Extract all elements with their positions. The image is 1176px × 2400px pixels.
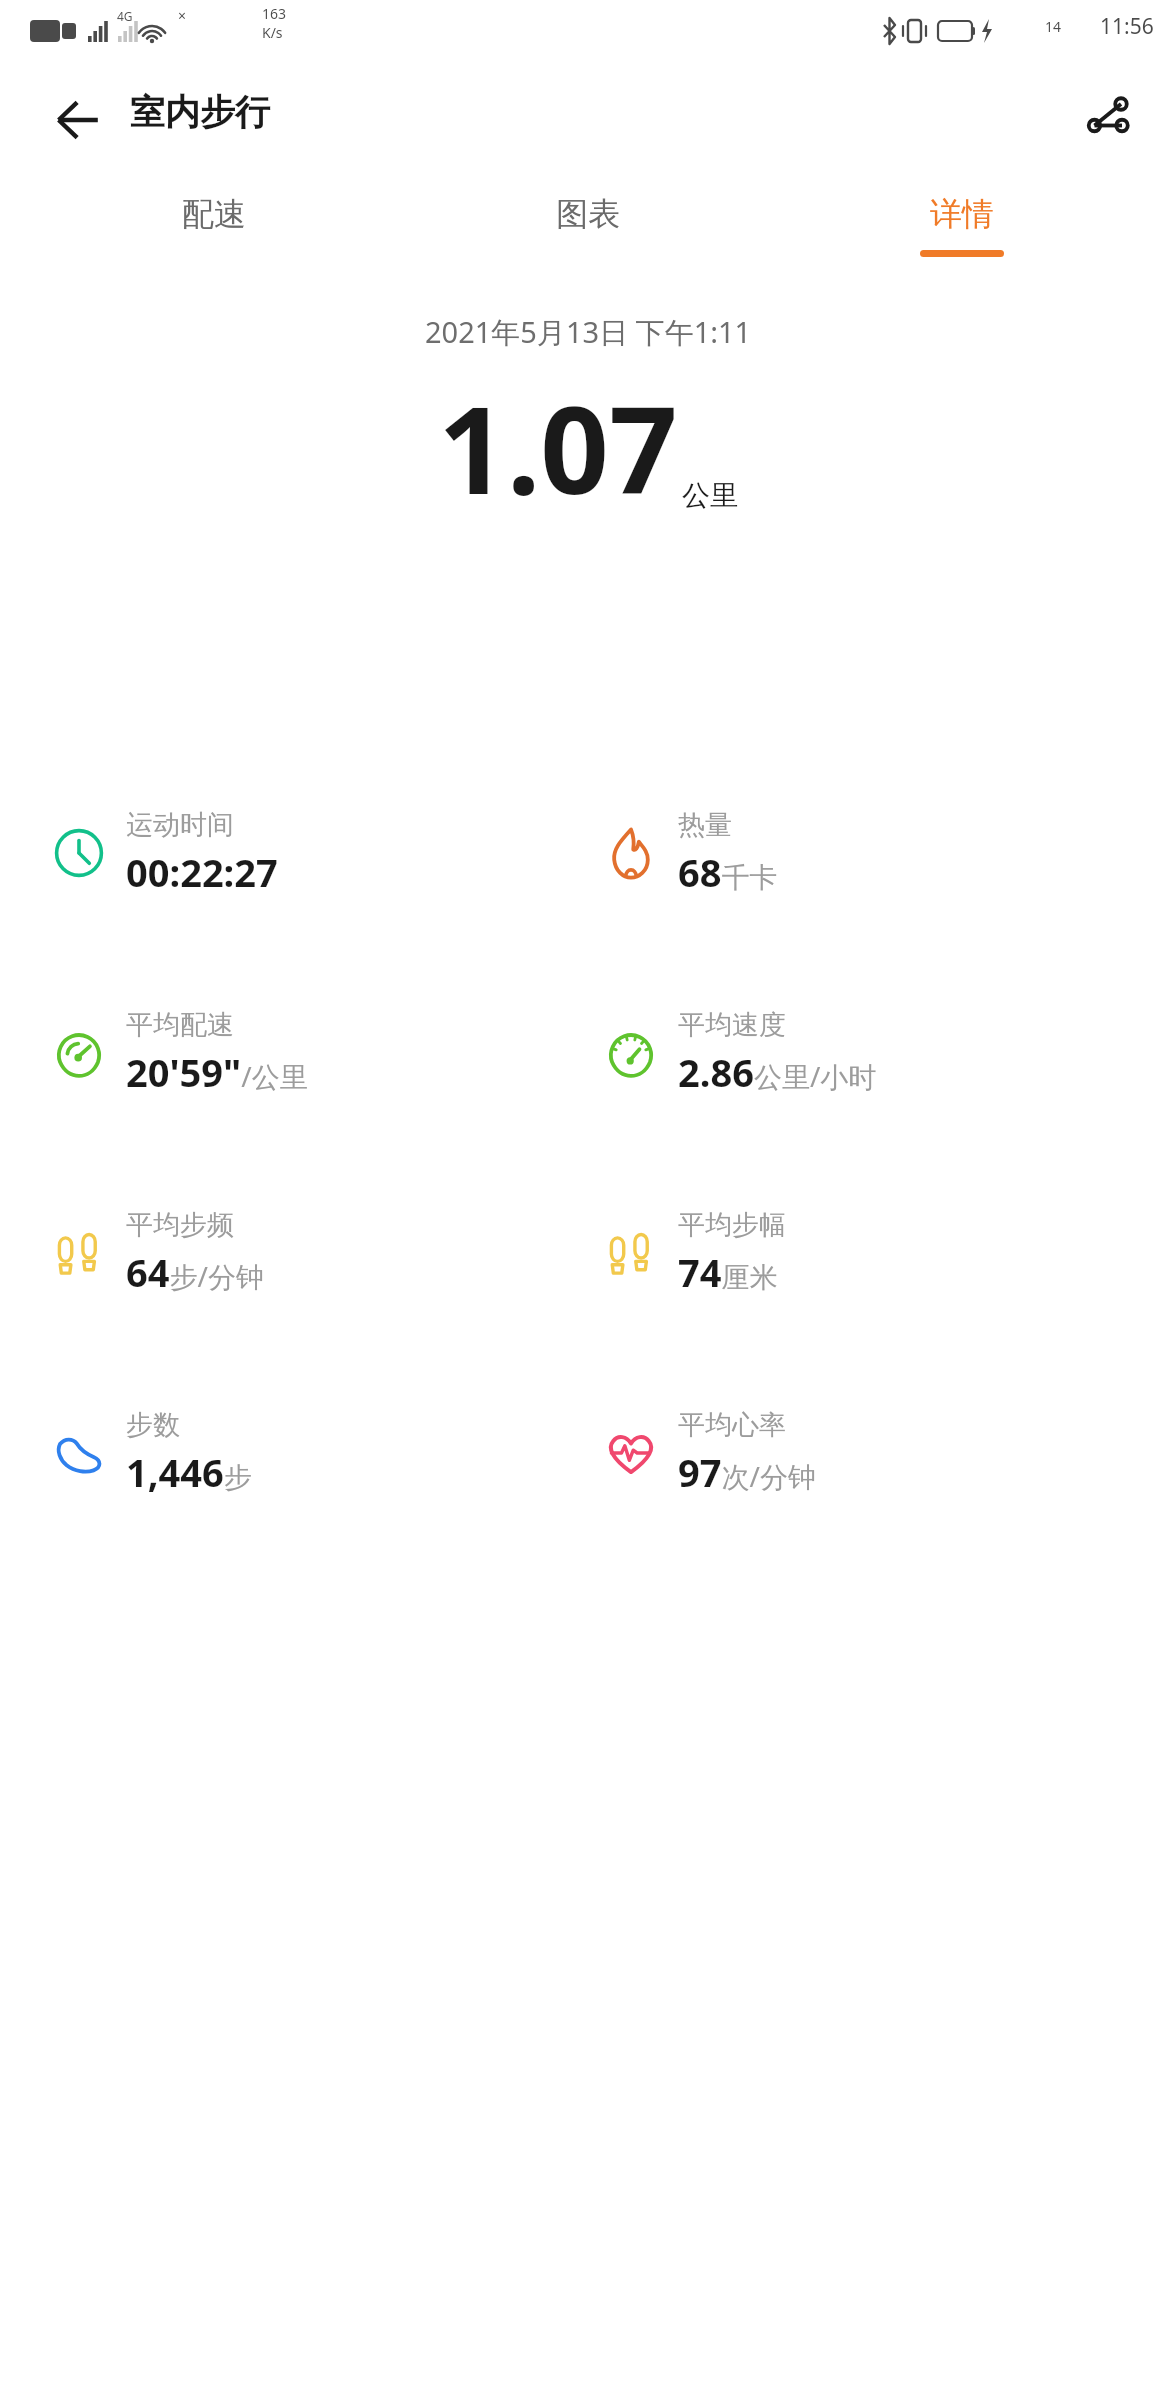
staticText: 平均步频 <box>126 1208 234 1242</box>
staticText: × <box>178 6 187 25</box>
staticText: 4G <box>117 8 133 24</box>
button[interactable]: 详情 <box>900 186 1024 265</box>
staticText: 配速 <box>182 194 246 234</box>
staticText: 图表 <box>556 194 620 234</box>
button[interactable]: 热量 <box>592 808 1176 898</box>
button[interactable]: 平均步频 <box>40 1208 588 1298</box>
staticText: 20'59"/公里 <box>126 1046 308 1098</box>
staticText: K/s <box>262 23 283 42</box>
staticText: 1.07 <box>438 366 678 529</box>
button[interactable]: 平均步幅 <box>592 1208 1176 1298</box>
staticText: 64步/分钟 <box>126 1246 264 1298</box>
staticText: 平均心率 <box>678 1408 786 1442</box>
staticText: 运动时间 <box>126 808 234 842</box>
staticText: 平均速度 <box>678 1008 786 1042</box>
button[interactable]: Back <box>40 82 116 158</box>
staticText: 室内步行 <box>130 90 270 134</box>
staticText: 2021年5月13日 下午1:11 <box>425 312 752 352</box>
staticText: 97次/分钟 <box>678 1446 816 1498</box>
button[interactable]: 配速 <box>152 186 276 265</box>
button[interactable]: 图表 <box>526 186 650 265</box>
staticText: 163 <box>262 4 287 23</box>
button[interactable]: 运动时间 <box>40 808 588 898</box>
button[interactable]: 平均心率 <box>592 1408 1176 1498</box>
button[interactable]: 平均速度 <box>592 1008 1176 1098</box>
staticText: 步数 <box>126 1408 180 1442</box>
button[interactable]: 步数 <box>40 1408 588 1498</box>
button[interactable]: Share <box>1070 78 1152 160</box>
staticText: 11:56 <box>1100 12 1154 41</box>
staticText: 详情 <box>930 194 994 234</box>
staticText: 68千卡 <box>678 846 778 898</box>
staticText: 14 <box>1045 17 1062 36</box>
staticText: 74厘米 <box>678 1246 778 1298</box>
staticText: 1,446步 <box>126 1446 252 1498</box>
staticText: 热量 <box>678 808 732 842</box>
staticText: 平均步幅 <box>678 1208 786 1242</box>
staticText: 公里 <box>682 478 738 513</box>
button[interactable]: 平均配速 <box>40 1008 588 1098</box>
staticText: 00:22:27 <box>126 846 278 898</box>
staticText: 2.86公里/小时 <box>678 1046 877 1098</box>
staticText: 平均配速 <box>126 1008 234 1042</box>
